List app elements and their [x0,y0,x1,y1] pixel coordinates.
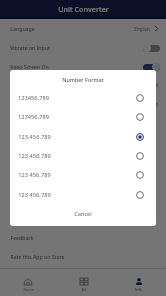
staticText: Language [10,25,35,32]
button[interactable]: About [0,114,166,133]
button[interactable]: Info [111,269,166,296]
staticText: Info [135,287,142,292]
button[interactable]: 123,456.789 [10,127,156,146]
staticText: Rate this App on Store [10,253,65,260]
button[interactable]: Keep Screen On [0,57,166,76]
staticText: Number Format [62,76,104,83]
button[interactable]: Home [0,269,56,296]
button[interactable]: Feedback [0,228,166,247]
staticText: 123 456.789 [18,171,51,179]
button[interactable]: 123456,789 [10,107,156,126]
staticText: Keep Screen On [10,63,49,70]
button[interactable]: 123 456.789 [10,165,156,184]
button[interactable]: Share App [0,152,166,171]
staticText: Themes [10,196,30,203]
button[interactable]: All [56,269,111,296]
button[interactable]: 123 456,789 [10,185,156,204]
staticText: Unit Converter [58,4,109,14]
staticText: Vibrate on Input [10,44,50,51]
button[interactable]: Licenses [0,209,166,228]
button[interactable]: On [143,63,160,71]
button[interactable]: Number Format [0,76,166,95]
staticText: Cancel [74,210,92,218]
staticText: 123456,789 [18,113,49,121]
button[interactable]: Off [143,44,160,52]
button[interactable]: Language [0,19,166,38]
staticText: All [81,287,86,292]
button[interactable]: Help [0,171,166,190]
button[interactable]: Decimal Places [0,95,166,114]
button[interactable]: 123456.789 [10,88,156,107]
staticText: 123 456,789 [18,152,51,160]
button[interactable]: 123 456,789 [10,146,156,165]
staticText: 123 456,789 [18,191,51,199]
button[interactable]: Vibrate on Input [0,38,166,57]
button[interactable]: Cancel [62,206,104,222]
staticText: 123,456.789 [18,133,51,141]
staticText: 123456.789 [18,94,49,102]
staticText: Home [23,287,34,292]
staticText: English [134,26,150,32]
staticText: Feedback [10,234,34,241]
button[interactable]: Privacy Policy [0,133,166,152]
button[interactable]: Themes [0,190,166,209]
button[interactable]: Rate this App on Store [0,247,166,266]
